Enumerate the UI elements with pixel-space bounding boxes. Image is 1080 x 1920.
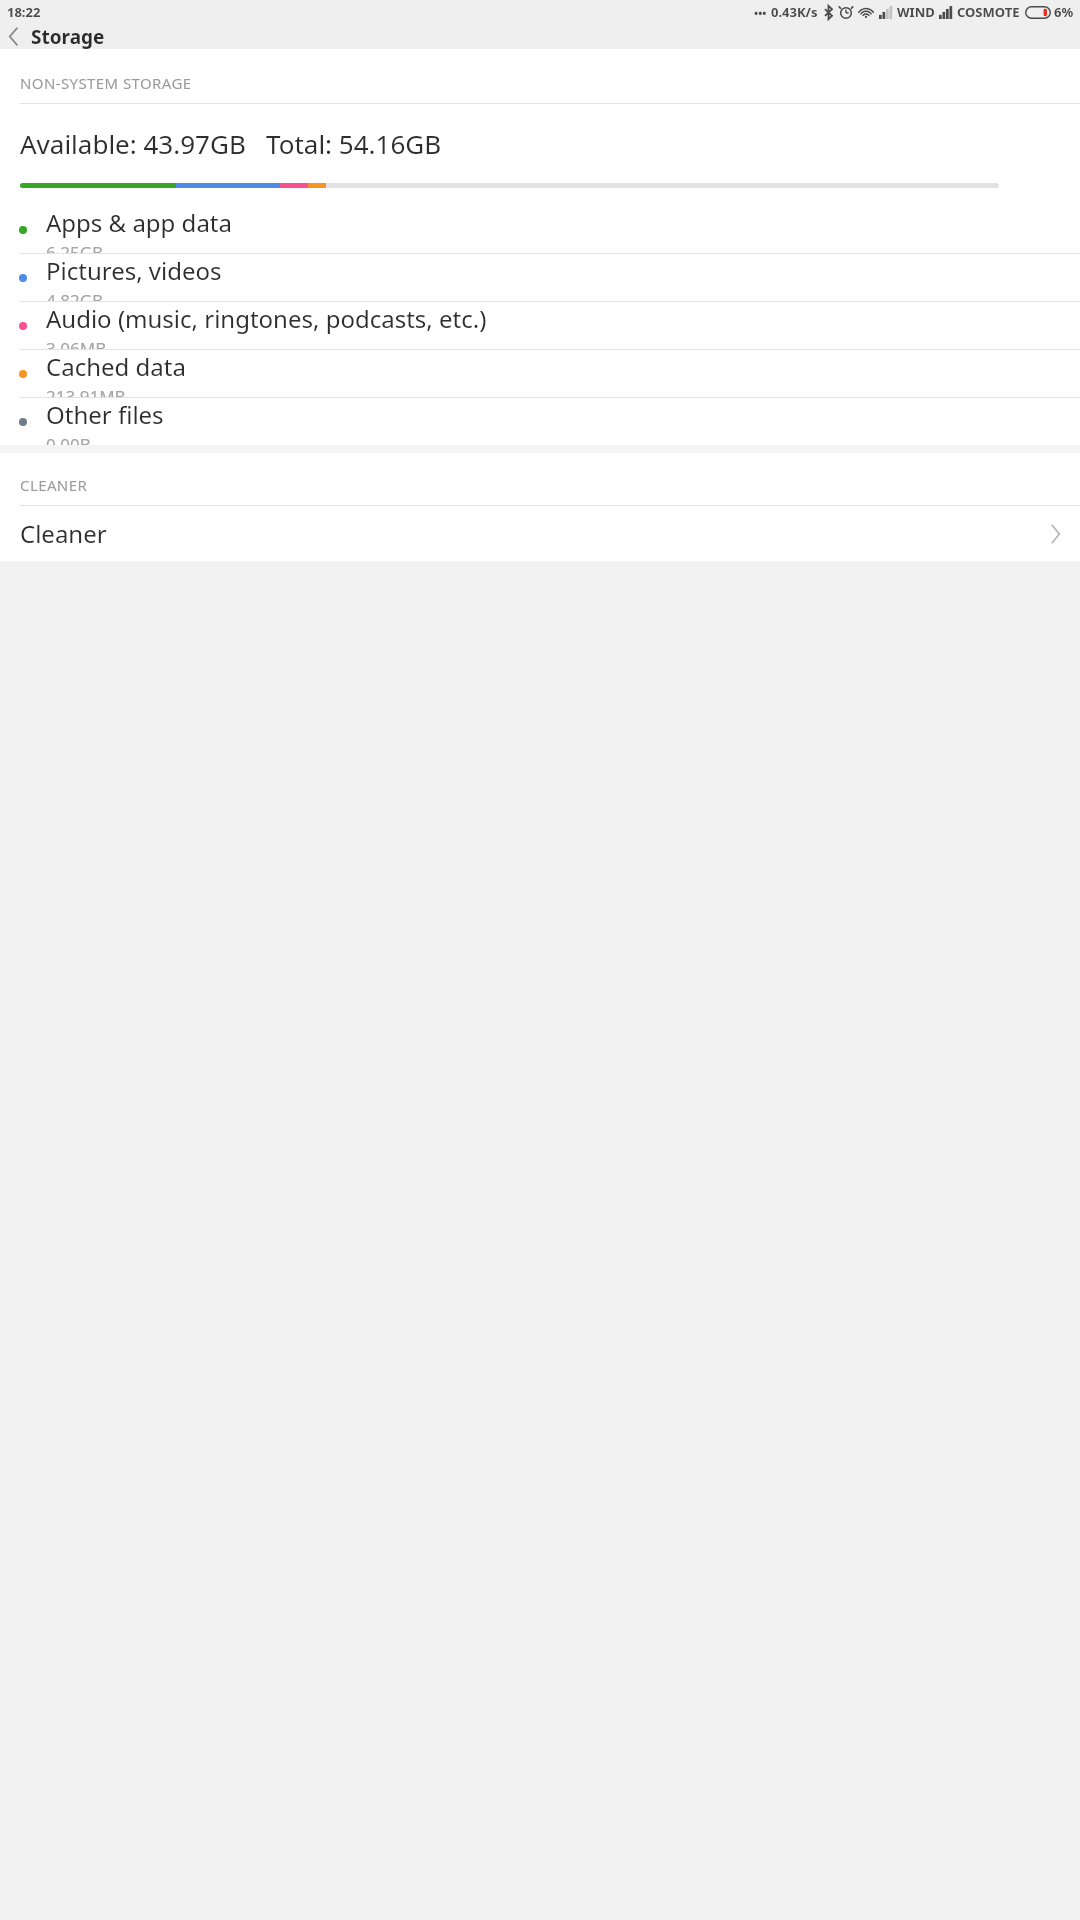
staticText: Storage: [31, 24, 105, 49]
staticText: 213.91MB: [46, 385, 126, 397]
staticText: WIND: [897, 3, 935, 21]
button[interactable]: Other files: [0, 398, 1080, 445]
staticText: 6.25GB: [46, 241, 104, 253]
staticText: Cleaner: [20, 517, 1050, 550]
staticText: 0.43K/s: [771, 3, 818, 21]
button[interactable]: Audio (music, ringtones, podcasts, etc.): [0, 302, 1080, 349]
staticText: COSMOTE: [957, 3, 1020, 21]
staticText: Available: 43.97GB Total: 54.16GB: [20, 126, 442, 161]
button[interactable]: Apps & app data: [0, 206, 1080, 253]
staticText: Other files: [46, 398, 164, 431]
staticText: 18:22: [7, 3, 41, 21]
button[interactable]: Pictures, videos: [0, 254, 1080, 301]
button[interactable]: Back: [0, 24, 26, 49]
staticText: Pictures, videos: [46, 254, 222, 287]
staticText: 3.06MB: [46, 337, 107, 349]
button[interactable]: Cleaner: [0, 506, 1080, 561]
staticText: CLEANER: [20, 475, 88, 495]
staticText: 0.00B: [46, 433, 91, 445]
staticText: 4.82GB: [46, 289, 104, 301]
staticText: •••: [754, 5, 767, 20]
staticText: Audio (music, ringtones, podcasts, etc.): [46, 302, 487, 335]
button[interactable]: Cached data: [0, 350, 1080, 397]
staticText: 6%: [1054, 3, 1074, 21]
staticText: Cached data: [46, 350, 186, 383]
staticText: Apps & app data: [46, 206, 232, 239]
staticText: NON-SYSTEM STORAGE: [20, 73, 192, 93]
